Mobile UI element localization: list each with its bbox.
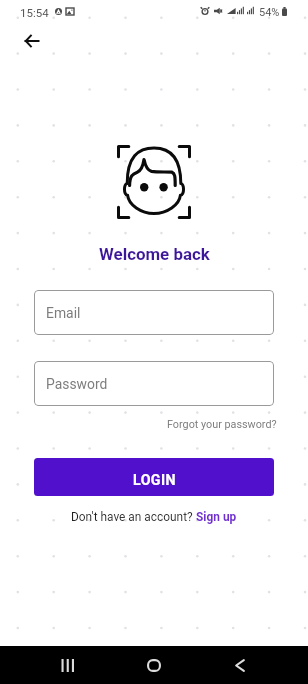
button[interactable]: Back — [216, 646, 264, 684]
button[interactable]: Back — [11, 23, 53, 58]
staticText: 54% — [259, 6, 280, 19]
button[interactable]: Sign up — [196, 510, 237, 524]
button[interactable]: Home — [130, 646, 178, 684]
staticText: Password — [46, 376, 108, 392]
staticText: Welcome back — [99, 244, 210, 264]
staticText: 15:54 — [20, 6, 49, 19]
staticText: Email — [46, 305, 81, 321]
staticText: Sign up — [196, 510, 237, 524]
staticText: LOGIN — [133, 472, 176, 489]
button[interactable]: Recent apps — [44, 646, 92, 684]
button[interactable]: Forgot your password? — [167, 418, 277, 431]
staticText: Forgot your password? — [167, 418, 277, 431]
button[interactable]: Password — [34, 361, 274, 406]
staticText: Don't have an account? — [71, 510, 196, 524]
button[interactable]: Email — [34, 290, 274, 335]
button[interactable]: LOGIN — [34, 458, 274, 496]
